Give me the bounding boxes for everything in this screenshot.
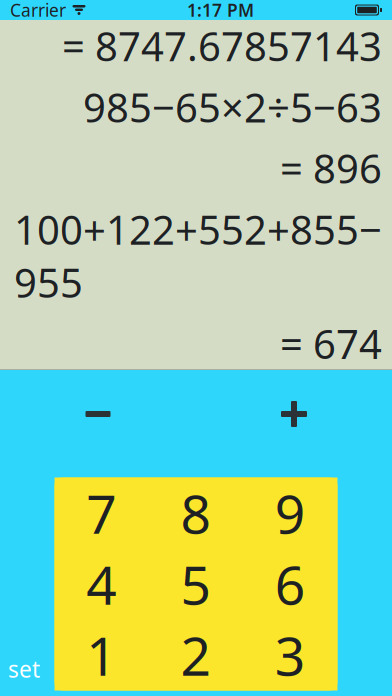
staticText: set xyxy=(8,654,40,684)
button[interactable]: set xyxy=(0,650,48,688)
staticText: 4 xyxy=(86,549,117,619)
button[interactable]: 3 xyxy=(243,619,337,690)
staticText: = 896 xyxy=(280,141,382,195)
staticText: 100+122+552+855−955 xyxy=(14,203,382,309)
button[interactable]: Add xyxy=(196,370,392,458)
staticText: 3 xyxy=(275,620,306,690)
staticText: 892.67857143+7855 xyxy=(26,0,382,11)
staticText: 5 xyxy=(180,549,211,619)
staticText: = 8747.67857143 xyxy=(62,19,382,72)
button[interactable]: 2 xyxy=(149,619,243,690)
staticText: 6 xyxy=(275,549,306,619)
staticText: 1 xyxy=(86,620,117,690)
button[interactable]: 4 xyxy=(55,548,149,619)
button[interactable]: 6 xyxy=(243,548,337,619)
staticText: 1:17 PM xyxy=(187,0,254,21)
staticText: 7 xyxy=(86,478,117,548)
button[interactable]: 1 xyxy=(55,619,149,690)
staticText: 2 xyxy=(180,620,211,690)
button[interactable]: 9 xyxy=(243,477,337,548)
button[interactable]: 8 xyxy=(149,477,243,548)
button[interactable]: Subtract xyxy=(0,370,196,458)
button[interactable]: 7 xyxy=(55,477,149,548)
staticText: Carrier xyxy=(10,0,66,21)
staticText: 8 xyxy=(180,478,211,548)
staticText: 9 xyxy=(275,478,306,548)
button[interactable]: 5 xyxy=(149,548,243,619)
staticText: = 674 xyxy=(280,317,382,370)
staticText: 985−65×2÷5−63 xyxy=(83,80,382,133)
